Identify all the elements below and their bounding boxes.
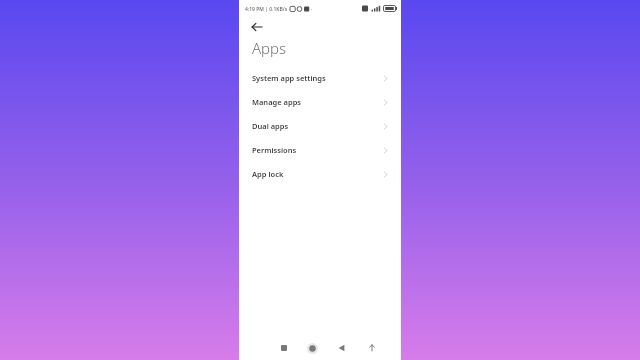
staticText: 4:19 PM | 0.1KB/s <box>245 6 288 13</box>
button[interactable]: Back <box>327 336 357 360</box>
button[interactable]: App lock <box>239 162 401 186</box>
button[interactable]: Show keyboard <box>357 336 387 360</box>
button[interactable]: Manage apps <box>239 90 401 114</box>
button[interactable]: System app settings <box>239 66 401 90</box>
staticText: Manage apps <box>252 97 383 107</box>
button[interactable]: Dual apps <box>239 114 401 138</box>
staticText: Dual apps <box>252 121 383 131</box>
staticText: · <box>311 6 313 13</box>
button[interactable]: Back <box>248 18 266 36</box>
staticText: Apps <box>252 38 287 58</box>
staticText: Permissions <box>252 145 383 155</box>
staticText: System app settings <box>252 73 383 83</box>
button[interactable]: Recent apps <box>269 336 298 360</box>
staticText: App lock <box>252 169 383 179</box>
button[interactable]: Permissions <box>239 138 401 162</box>
button[interactable]: Home <box>298 336 327 360</box>
